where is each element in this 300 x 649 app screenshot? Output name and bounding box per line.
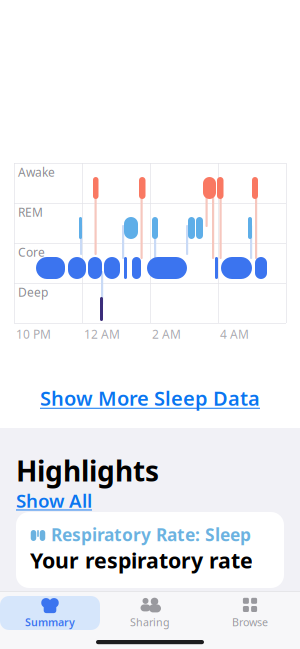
staticText: 10 PM xyxy=(16,326,51,342)
staticText: Show More Sleep Data xyxy=(40,385,260,411)
button[interactable]: Browse xyxy=(200,593,300,633)
staticText: Summary xyxy=(25,615,75,629)
staticText: Core xyxy=(18,244,45,260)
staticText: 4 AM xyxy=(220,326,249,342)
staticText: Respiratory Rate: Sleep xyxy=(51,523,251,546)
staticText: Browse xyxy=(232,615,268,629)
staticText: 12 AM xyxy=(84,326,120,342)
staticText: Show All xyxy=(16,488,92,513)
button[interactable]: Summary xyxy=(0,593,100,633)
staticText: REM xyxy=(18,204,43,220)
staticText: Deep xyxy=(18,284,48,300)
button[interactable]: Sharing xyxy=(100,593,200,633)
staticText: Your respiratory rate xyxy=(30,546,253,574)
staticText: Sharing xyxy=(130,615,170,629)
button[interactable]: Show More Sleep Data xyxy=(32,379,268,417)
staticText: Awake xyxy=(18,164,55,180)
staticText: Highlights xyxy=(16,452,159,489)
button[interactable]: Respiratory Rate: Sleep xyxy=(16,512,284,588)
button[interactable]: Show All xyxy=(12,486,96,515)
staticText: 2 AM xyxy=(152,326,181,342)
